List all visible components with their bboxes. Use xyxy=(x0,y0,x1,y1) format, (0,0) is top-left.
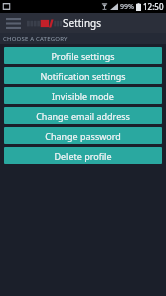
button[interactable]: Notification settings xyxy=(4,67,162,84)
staticText: Delete profile xyxy=(54,150,112,162)
button[interactable]: Delete profile xyxy=(4,147,162,164)
button[interactable]: Open navigation menu xyxy=(0,13,26,33)
button[interactable]: Profile settings xyxy=(4,47,162,64)
staticText: 99% xyxy=(120,2,134,12)
button[interactable]: Change email address xyxy=(4,107,162,124)
button[interactable]: App logo xyxy=(26,13,60,33)
staticText: Profile settings xyxy=(51,50,115,62)
staticText: Settings xyxy=(63,16,102,30)
button[interactable]: Invisible mode xyxy=(4,87,162,104)
staticText: Change password xyxy=(45,130,121,142)
button[interactable]: Change password xyxy=(4,127,162,144)
staticText: Notification settings xyxy=(40,70,126,82)
staticText: Change email address xyxy=(36,110,130,122)
staticText: CHOOSE A CATEGORY xyxy=(3,35,68,43)
staticText: Invisible mode xyxy=(52,90,114,102)
staticText: 12:50 xyxy=(143,1,164,12)
